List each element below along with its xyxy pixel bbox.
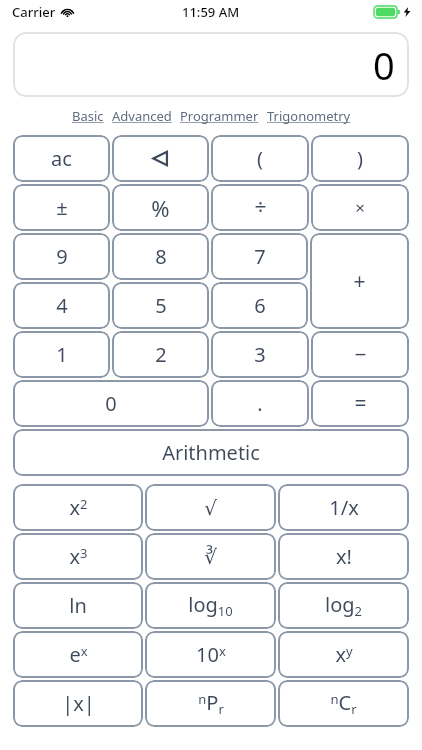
staticText: ∛: [204, 545, 217, 568]
staticText: log10: [188, 591, 233, 620]
button[interactable]: 8: [112, 233, 209, 280]
staticText: nPr: [198, 689, 224, 718]
staticText: 1: [56, 341, 68, 368]
button[interactable]: −: [311, 331, 409, 378]
staticText: ): [357, 145, 363, 172]
button[interactable]: ∛: [145, 533, 276, 580]
staticText: x!: [336, 543, 352, 570]
staticText: 3: [254, 341, 266, 368]
staticText: Arithmetic: [162, 439, 260, 466]
staticText: 7: [254, 243, 266, 270]
button[interactable]: 6: [211, 282, 308, 329]
staticText: x3: [69, 543, 88, 570]
button[interactable]: ac: [13, 135, 110, 182]
button[interactable]: x3: [13, 533, 143, 580]
staticText: =: [354, 389, 367, 418]
button[interactable]: Basic: [68, 107, 108, 125]
staticText: Basic: [72, 107, 104, 125]
button[interactable]: 7: [211, 233, 308, 280]
button[interactable]: 0: [13, 380, 209, 427]
staticText: √: [204, 496, 217, 519]
staticText: 1/x: [329, 494, 359, 521]
staticText: +: [353, 267, 366, 296]
button[interactable]: x!: [278, 533, 409, 580]
button[interactable]: Trigonometry: [263, 107, 355, 125]
staticText: ex: [69, 641, 88, 668]
staticText: ÷: [254, 193, 267, 222]
staticText: −: [354, 340, 367, 369]
staticText: 9: [56, 243, 68, 270]
button[interactable]: Arithmetic: [13, 429, 409, 476]
staticText: 2: [155, 341, 167, 368]
button[interactable]: √: [145, 484, 276, 531]
staticText: nCr: [330, 689, 357, 718]
staticText: ×: [355, 196, 365, 219]
button[interactable]: log2: [278, 582, 409, 629]
button[interactable]: +: [310, 233, 409, 329]
staticText: 0: [105, 390, 117, 417]
button[interactable]: (: [211, 135, 309, 182]
staticText: %: [151, 193, 170, 223]
staticText: (: [257, 145, 263, 172]
staticText: ac: [51, 145, 72, 172]
button[interactable]: 1: [13, 331, 110, 378]
button[interactable]: 5: [112, 282, 209, 329]
button[interactable]: nCr: [278, 680, 409, 727]
button[interactable]: 2: [112, 331, 209, 378]
staticText: Carrier: [12, 3, 56, 21]
staticText: Programmer: [180, 107, 259, 125]
staticText: ln: [69, 592, 87, 619]
button[interactable]: 9: [13, 233, 110, 280]
staticText: 4: [56, 292, 68, 319]
button[interactable]: =: [311, 380, 409, 427]
button[interactable]: ÷: [211, 184, 309, 231]
button[interactable]: 10x: [145, 631, 276, 678]
button[interactable]: log10: [145, 582, 276, 629]
button[interactable]: ): [311, 135, 409, 182]
button[interactable]: %: [112, 184, 209, 231]
button[interactable]: Advanced: [108, 107, 176, 125]
staticText: ±: [56, 194, 68, 221]
button[interactable]: 1/x: [278, 484, 409, 531]
staticText: Trigonometry: [267, 107, 351, 125]
staticText: Advanced: [112, 107, 172, 125]
staticText: x2: [69, 494, 88, 521]
button[interactable]: ±: [13, 184, 110, 231]
staticText: 8: [155, 243, 167, 270]
staticText: xy: [335, 641, 353, 668]
button[interactable]: Backspace: [112, 135, 209, 182]
button[interactable]: x2: [13, 484, 143, 531]
staticText: |x|: [62, 690, 95, 717]
staticText: 10x: [196, 641, 226, 668]
button[interactable]: Programmer: [176, 107, 263, 125]
staticText: .: [257, 390, 263, 417]
staticText: 11:59 AM: [182, 3, 240, 21]
staticText: 6: [254, 292, 266, 319]
button[interactable]: ln: [13, 582, 143, 629]
button[interactable]: 4: [13, 282, 110, 329]
button[interactable]: nPr: [145, 680, 276, 727]
button[interactable]: ×: [311, 184, 409, 231]
button[interactable]: ex: [13, 631, 143, 678]
staticText: log2: [325, 591, 362, 620]
button[interactable]: 3: [211, 331, 309, 378]
staticText: 0: [373, 39, 395, 91]
button[interactable]: |x|: [13, 680, 143, 727]
staticText: 5: [155, 292, 167, 319]
button[interactable]: xy: [278, 631, 409, 678]
button[interactable]: .: [211, 380, 309, 427]
